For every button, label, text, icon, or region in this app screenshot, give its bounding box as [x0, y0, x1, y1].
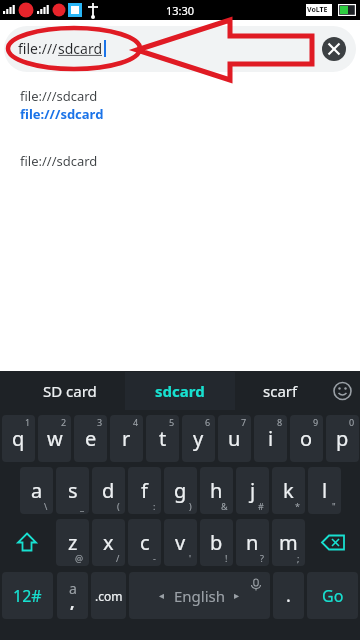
button[interactable]: Backspace — [308, 519, 358, 566]
staticText: 3 — [97, 416, 103, 428]
staticText: 1 — [25, 416, 31, 428]
staticText: ? — [260, 552, 264, 564]
button[interactable]: d — [92, 467, 125, 514]
button[interactable]: z — [56, 519, 89, 566]
button[interactable]: file:///sdcard — [20, 87, 98, 105]
button[interactable]: 12# — [2, 572, 53, 619]
staticText: k — [283, 477, 294, 504]
staticText: SD card — [43, 381, 97, 401]
staticText: b — [210, 529, 223, 556]
staticText: , — [70, 591, 75, 613]
button[interactable]: Go — [307, 572, 358, 619]
button[interactable]: Clear — [322, 37, 346, 61]
button[interactable]: m — [272, 519, 305, 566]
staticText: ) — [189, 500, 192, 512]
staticText: g — [174, 477, 187, 504]
staticText: j — [250, 477, 256, 504]
staticText: p — [336, 425, 349, 452]
staticText: ! — [225, 552, 228, 564]
button[interactable]: SD card — [15, 372, 125, 410]
button[interactable]: j — [236, 467, 269, 514]
button[interactable]: Shift — [2, 519, 52, 566]
staticText: scarf — [263, 381, 298, 401]
staticText: q — [12, 425, 25, 452]
staticText: : — [153, 500, 156, 512]
staticText: x — [103, 529, 114, 556]
staticText: ( — [117, 500, 120, 512]
staticText: m — [279, 529, 298, 556]
staticText: n — [246, 529, 259, 556]
staticText: \ — [44, 500, 48, 512]
button[interactable]: Emoji — [325, 372, 360, 410]
staticText: ▸ — [234, 590, 240, 602]
staticText: . — [286, 583, 291, 608]
button[interactable]: i — [254, 415, 287, 462]
button[interactable]: t — [146, 415, 179, 462]
button[interactable]: o — [290, 415, 323, 462]
staticText: .com — [95, 588, 123, 604]
staticText: VoLTE — [307, 5, 328, 15]
staticText: 12# — [13, 585, 42, 607]
staticText: Go — [322, 585, 344, 607]
staticText: 13:30 — [166, 3, 195, 18]
button[interactable]: r — [110, 415, 143, 462]
button[interactable]: Space — [129, 572, 270, 619]
staticText: e — [85, 425, 97, 452]
staticText: & — [221, 500, 228, 512]
staticText: u — [228, 425, 241, 452]
staticText: * — [295, 500, 300, 512]
button[interactable]: c — [128, 519, 161, 566]
staticText: v — [175, 529, 186, 556]
staticText: 8 — [277, 416, 283, 428]
staticText: y — [193, 425, 204, 452]
staticText: z — [68, 529, 78, 556]
staticText: _ — [80, 500, 84, 512]
button[interactable]: . — [273, 572, 304, 619]
staticText: t — [159, 425, 167, 452]
staticText: English — [174, 586, 226, 606]
button[interactable]: h — [200, 467, 233, 514]
button[interactable]: w — [38, 415, 71, 462]
button[interactable]: sdcard — [125, 372, 235, 410]
button[interactable]: e — [74, 415, 107, 462]
staticText: h — [210, 477, 223, 504]
button[interactable]: k — [272, 467, 305, 514]
button[interactable]: y — [182, 415, 215, 462]
staticText: file:/// — [18, 39, 58, 58]
button[interactable]: x — [92, 519, 125, 566]
button[interactable]: Symbols — [57, 572, 88, 619]
staticText: 2 — [61, 416, 67, 428]
button[interactable] — [4, 26, 356, 72]
staticText: w — [47, 425, 63, 452]
staticText: o — [300, 425, 313, 452]
staticText: 9 — [313, 416, 319, 428]
staticText: c — [140, 529, 150, 556]
staticText: 6 — [205, 416, 211, 428]
button[interactable]: file:///sdcard — [20, 105, 104, 123]
staticText: ◂ — [159, 590, 165, 602]
button[interactable]: p — [326, 415, 359, 462]
button[interactable]: f — [128, 467, 161, 514]
button[interactable]: .com — [91, 572, 126, 619]
button[interactable]: scarf — [235, 372, 325, 410]
staticText: r — [122, 425, 131, 452]
button[interactable]: n — [236, 519, 269, 566]
button[interactable]: v — [164, 519, 197, 566]
staticText: ; — [297, 552, 300, 564]
button[interactable]: q — [2, 415, 35, 462]
staticText: 4 — [133, 416, 139, 428]
button[interactable]: file:///sdcard — [20, 152, 98, 170]
staticText: # — [258, 500, 264, 512]
button[interactable]: l — [308, 467, 341, 514]
button[interactable]: s — [56, 467, 89, 514]
staticText: - — [153, 552, 156, 564]
button[interactable]: a — [20, 467, 53, 514]
staticText: l — [322, 477, 328, 504]
staticText: sdcard — [58, 39, 103, 58]
staticText: 7 — [241, 416, 247, 428]
button[interactable]: b — [200, 519, 233, 566]
button[interactable]: u — [218, 415, 251, 462]
button[interactable]: g — [164, 467, 197, 514]
staticText: a — [31, 477, 43, 504]
staticText: 0 — [349, 416, 355, 428]
